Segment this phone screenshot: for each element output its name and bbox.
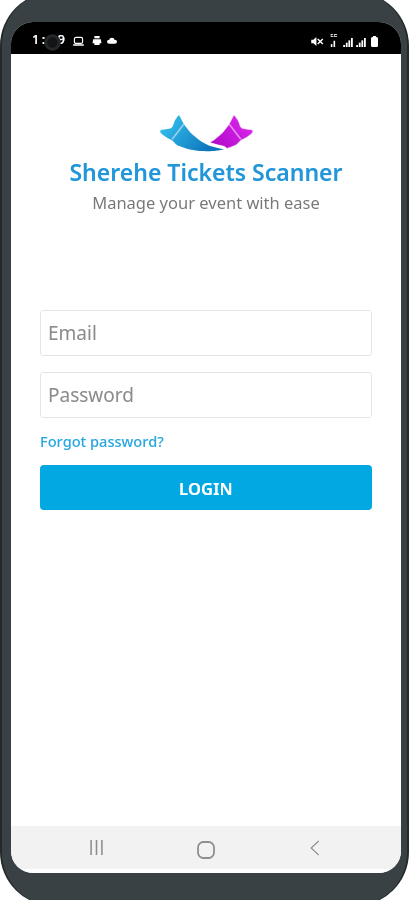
- button[interactable]: Recent apps: [74, 826, 119, 869]
- staticText: Manage your event with ease: [92, 191, 320, 213]
- button[interactable]: LOGIN: [40, 465, 372, 510]
- staticText: 1:09: [32, 30, 68, 48]
- staticText: Email: [48, 320, 97, 346]
- button[interactable]: Forgot password?: [40, 431, 164, 451]
- staticText: Sherehe Tickets Scanner: [69, 156, 343, 187]
- button[interactable]: Password: [40, 372, 372, 418]
- button[interactable]: Email: [40, 310, 372, 356]
- button[interactable]: Back: [292, 826, 337, 869]
- button[interactable]: Home: [183, 828, 228, 871]
- staticText: Password: [48, 382, 134, 408]
- staticText: LOGIN: [179, 477, 233, 499]
